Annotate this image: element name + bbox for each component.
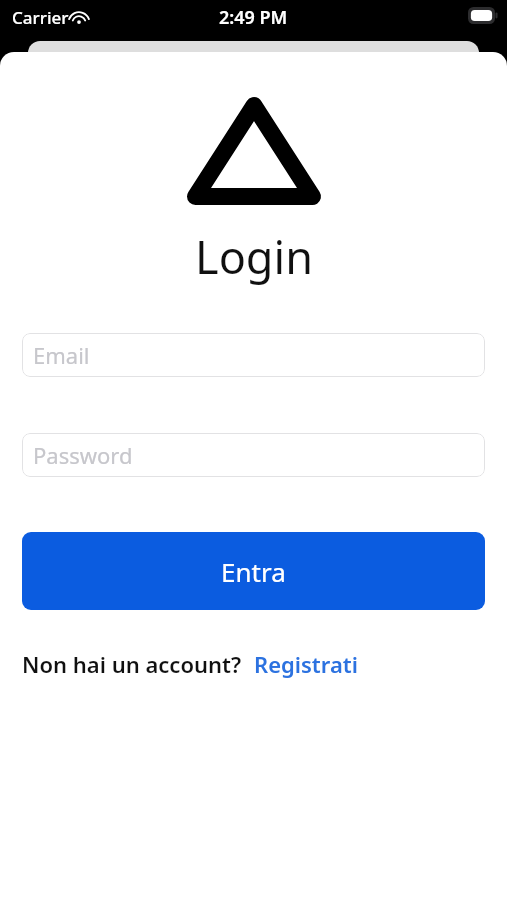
staticText: Entra [221, 554, 286, 589]
button[interactable]: Registrati [254, 649, 358, 679]
other: Wi-Fi [68, 8, 90, 24]
staticText: Login [195, 226, 313, 287]
staticText: Registrati [254, 649, 358, 679]
staticText: Email [33, 340, 90, 370]
other: App logo [186, 96, 322, 206]
other: Battery full [468, 7, 498, 24]
staticText: Non hai un account? [22, 649, 242, 679]
staticText: Password [33, 440, 133, 470]
staticText: Carrier [12, 6, 69, 29]
staticText: 2:49 PM [219, 5, 288, 30]
button[interactable]: Entra [22, 532, 485, 610]
button[interactable]: Email [22, 333, 485, 377]
button[interactable]: Password [22, 433, 485, 477]
